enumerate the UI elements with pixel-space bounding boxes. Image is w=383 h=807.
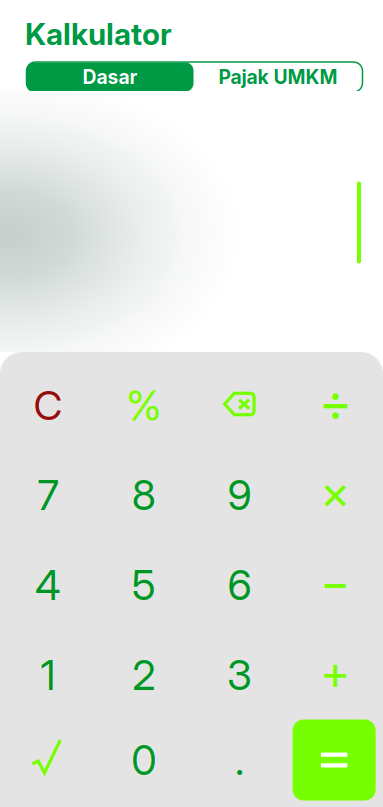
button[interactable]: Decimal point <box>191 720 287 807</box>
button[interactable]: 6 <box>191 540 287 630</box>
staticText: 2 <box>132 650 155 700</box>
button[interactable]: Multiply <box>287 450 383 540</box>
staticText: 5 <box>132 560 156 610</box>
button[interactable]: 4 <box>0 540 96 630</box>
staticText: Dasar <box>82 65 137 89</box>
staticText: 8 <box>132 470 156 520</box>
button[interactable]: Clear <box>0 360 96 450</box>
staticText: − <box>320 554 351 610</box>
button[interactable]: 9 <box>191 450 287 540</box>
button[interactable]: Equals <box>287 720 383 807</box>
button[interactable]: Pajak UMKM <box>193 62 362 91</box>
button[interactable]: Divide <box>287 360 383 450</box>
staticText: Pajak UMKM <box>218 65 337 89</box>
button[interactable]: Minus <box>287 540 383 630</box>
staticText: . <box>235 735 244 785</box>
staticText: 6 <box>227 560 251 610</box>
staticText: C <box>33 381 62 430</box>
staticText: % <box>126 380 161 430</box>
staticText: Kalkulator <box>25 16 172 52</box>
staticText: 3 <box>227 650 252 700</box>
staticText: 4 <box>35 560 61 610</box>
button[interactable]: Dasar <box>26 62 193 91</box>
button[interactable]: Square root <box>0 720 96 807</box>
button[interactable]: Backspace <box>191 360 287 450</box>
button[interactable]: Percent <box>96 360 192 450</box>
staticText: × <box>320 464 351 520</box>
button[interactable]: 8 <box>96 450 192 540</box>
staticText: 9 <box>227 470 251 520</box>
staticText: + <box>320 644 351 700</box>
button[interactable]: 7 <box>0 450 96 540</box>
button[interactable]: 3 <box>191 630 287 720</box>
button[interactable]: Plus <box>287 630 383 720</box>
staticText: 7 <box>37 470 58 520</box>
button[interactable]: 5 <box>96 540 192 630</box>
button[interactable]: 1 <box>0 630 96 720</box>
button[interactable]: 0 <box>96 720 192 807</box>
staticText: ÷ <box>318 370 352 433</box>
staticText: 1 <box>40 650 55 700</box>
staticText: 0 <box>131 735 156 785</box>
button[interactable]: 2 <box>96 630 192 720</box>
